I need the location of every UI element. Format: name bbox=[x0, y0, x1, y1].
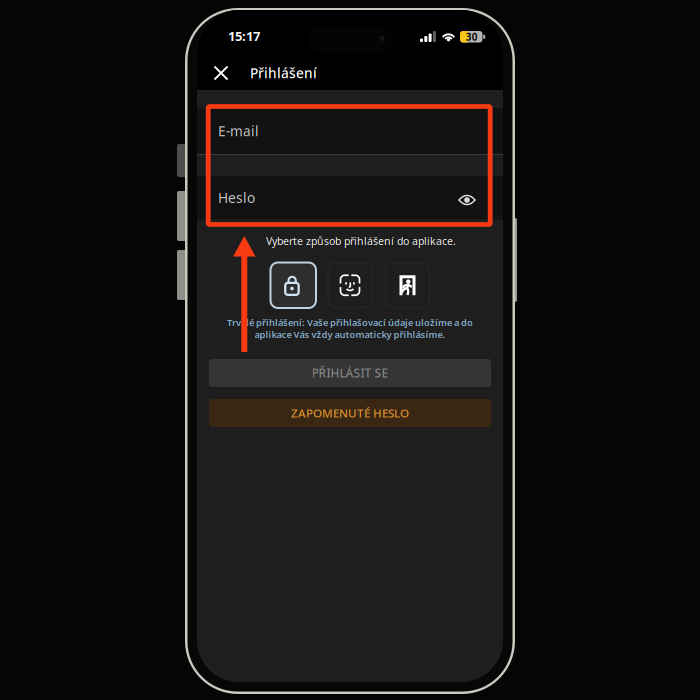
button[interactable]: PŘIHLÁSIT SE bbox=[209, 359, 491, 387]
staticText: Heslo bbox=[218, 188, 255, 207]
staticText: Vyberte způsob přihlášení do aplikace. bbox=[266, 234, 456, 248]
button[interactable]: Quick sign in bbox=[385, 263, 429, 307]
button[interactable]: ZAPOMENUTÉ HESLO bbox=[209, 399, 491, 427]
staticText: aplikace Vás vždy automaticky přihlásíme… bbox=[254, 328, 445, 341]
staticText: Přihlášení bbox=[250, 64, 317, 82]
staticText: PŘIHLÁSIT SE bbox=[311, 365, 388, 381]
button[interactable]: Heslo bbox=[197, 176, 503, 219]
button[interactable]: Sign in with password bbox=[270, 262, 316, 308]
button[interactable]: Show password bbox=[452, 188, 482, 212]
staticText: ZAPOMENUTÉ HESLO bbox=[291, 405, 409, 421]
staticText: 15:17 bbox=[228, 27, 260, 45]
staticText: Trvalé přihlášení: Vaše přihlašovací úda… bbox=[227, 316, 473, 329]
staticText: E-mail bbox=[218, 122, 259, 140]
staticText: 30 bbox=[466, 30, 478, 43]
button[interactable]: Close bbox=[210, 62, 232, 84]
button[interactable]: E-mail bbox=[197, 108, 503, 154]
button[interactable]: Sign in with Face ID bbox=[328, 263, 372, 307]
